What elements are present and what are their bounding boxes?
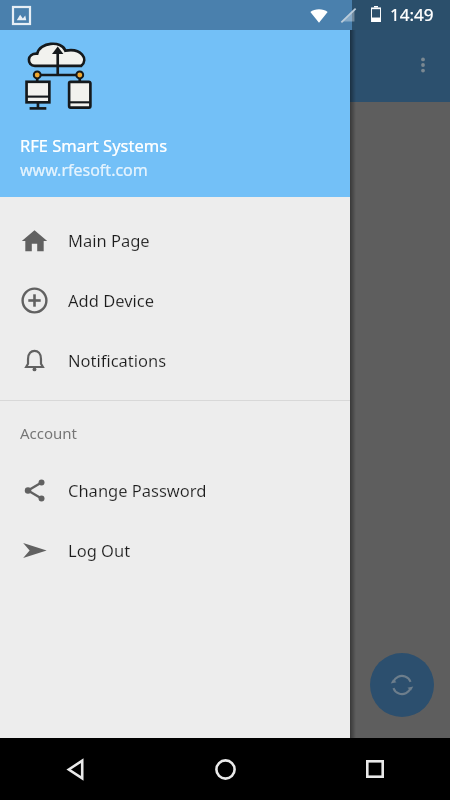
button[interactable]: More options <box>406 48 440 82</box>
staticText: Account <box>20 423 78 443</box>
button[interactable]: Log Out <box>0 520 350 580</box>
staticText: Main Page <box>68 229 150 251</box>
button[interactable]: Add Device <box>0 270 350 330</box>
staticText: 14:49 <box>390 3 434 26</box>
staticText: RFE Smart Systems <box>20 134 168 156</box>
button[interactable]: Home <box>150 738 300 800</box>
staticText: Log Out <box>68 539 131 561</box>
button[interactable]: Main Page <box>0 210 350 270</box>
button[interactable]: Refresh <box>370 653 434 717</box>
button[interactable]: Notifications <box>0 330 350 390</box>
staticText: www.rfesoft.com <box>20 159 148 181</box>
button[interactable]: Change Password <box>0 460 350 520</box>
staticText: Notifications <box>68 349 167 371</box>
staticText: Add Device <box>68 289 155 311</box>
button[interactable]: Recent apps <box>300 738 450 800</box>
button[interactable]: Back <box>0 738 150 800</box>
staticText: Change Password <box>68 479 207 501</box>
